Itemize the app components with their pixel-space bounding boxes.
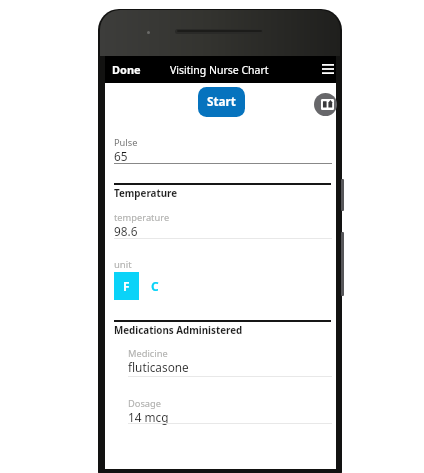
staticText: Start [207, 93, 236, 109]
staticText: Temperature [114, 187, 178, 200]
button[interactable] [128, 397, 332, 425]
button[interactable] [114, 136, 332, 165]
button[interactable]: Start [198, 87, 245, 117]
button[interactable]: C [142, 272, 167, 300]
button[interactable] [114, 211, 332, 240]
staticText: unit [114, 258, 132, 271]
button[interactable]: Notes [314, 93, 337, 116]
staticText: temperature [114, 211, 170, 224]
staticText: fluticasone [128, 359, 189, 375]
staticText: Pulse [114, 136, 138, 149]
staticText: F [123, 278, 130, 294]
button[interactable]: Done [112, 57, 141, 82]
staticText: Medications Administered [114, 324, 243, 337]
staticText: Dosage [128, 397, 162, 410]
button[interactable] [128, 347, 332, 378]
button[interactable]: Menu [320, 61, 336, 77]
staticText: 65 [114, 148, 128, 164]
staticText: C [151, 278, 159, 294]
staticText: Done [112, 62, 141, 77]
staticText: Visiting Nurse Chart [170, 63, 269, 77]
staticText: 98.6 [114, 223, 138, 239]
staticText: Medicine [128, 347, 168, 360]
button[interactable]: F [114, 272, 139, 300]
staticText: 14 mcg [128, 409, 169, 425]
